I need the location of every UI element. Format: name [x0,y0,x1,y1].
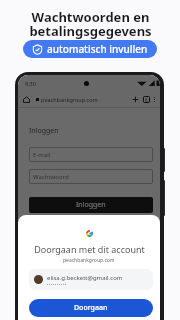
staticText: elisa.g.beckett@gmail.com [47,274,123,282]
staticText: peachbankgroup.com [41,96,98,103]
button[interactable]: Doorgaan [29,299,153,317]
staticText: E-mail [33,151,51,159]
staticText: automatisch invullen [47,42,148,56]
staticText: 9:30 [25,80,36,87]
staticText: Wachtwoord [33,173,69,181]
button[interactable]: automatisch invullen [23,40,157,58]
staticText: Inloggen [76,200,106,210]
other: More options [154,97,155,102]
button[interactable]: Inloggen [29,197,153,213]
staticText: Doorgaan met dit account [34,243,145,255]
staticText: peachbankgroup.com [63,257,115,264]
staticText: 6 [145,97,148,103]
staticText: Inloggen [29,126,59,136]
staticText: Wachtwoorden en betalingsgegevens [29,8,152,40]
other: Home [23,96,30,103]
button[interactable]: elisa.g.beckett@gmail.com [29,269,153,290]
staticText: Doorgaan [74,303,108,313]
other: New tab [132,96,139,103]
